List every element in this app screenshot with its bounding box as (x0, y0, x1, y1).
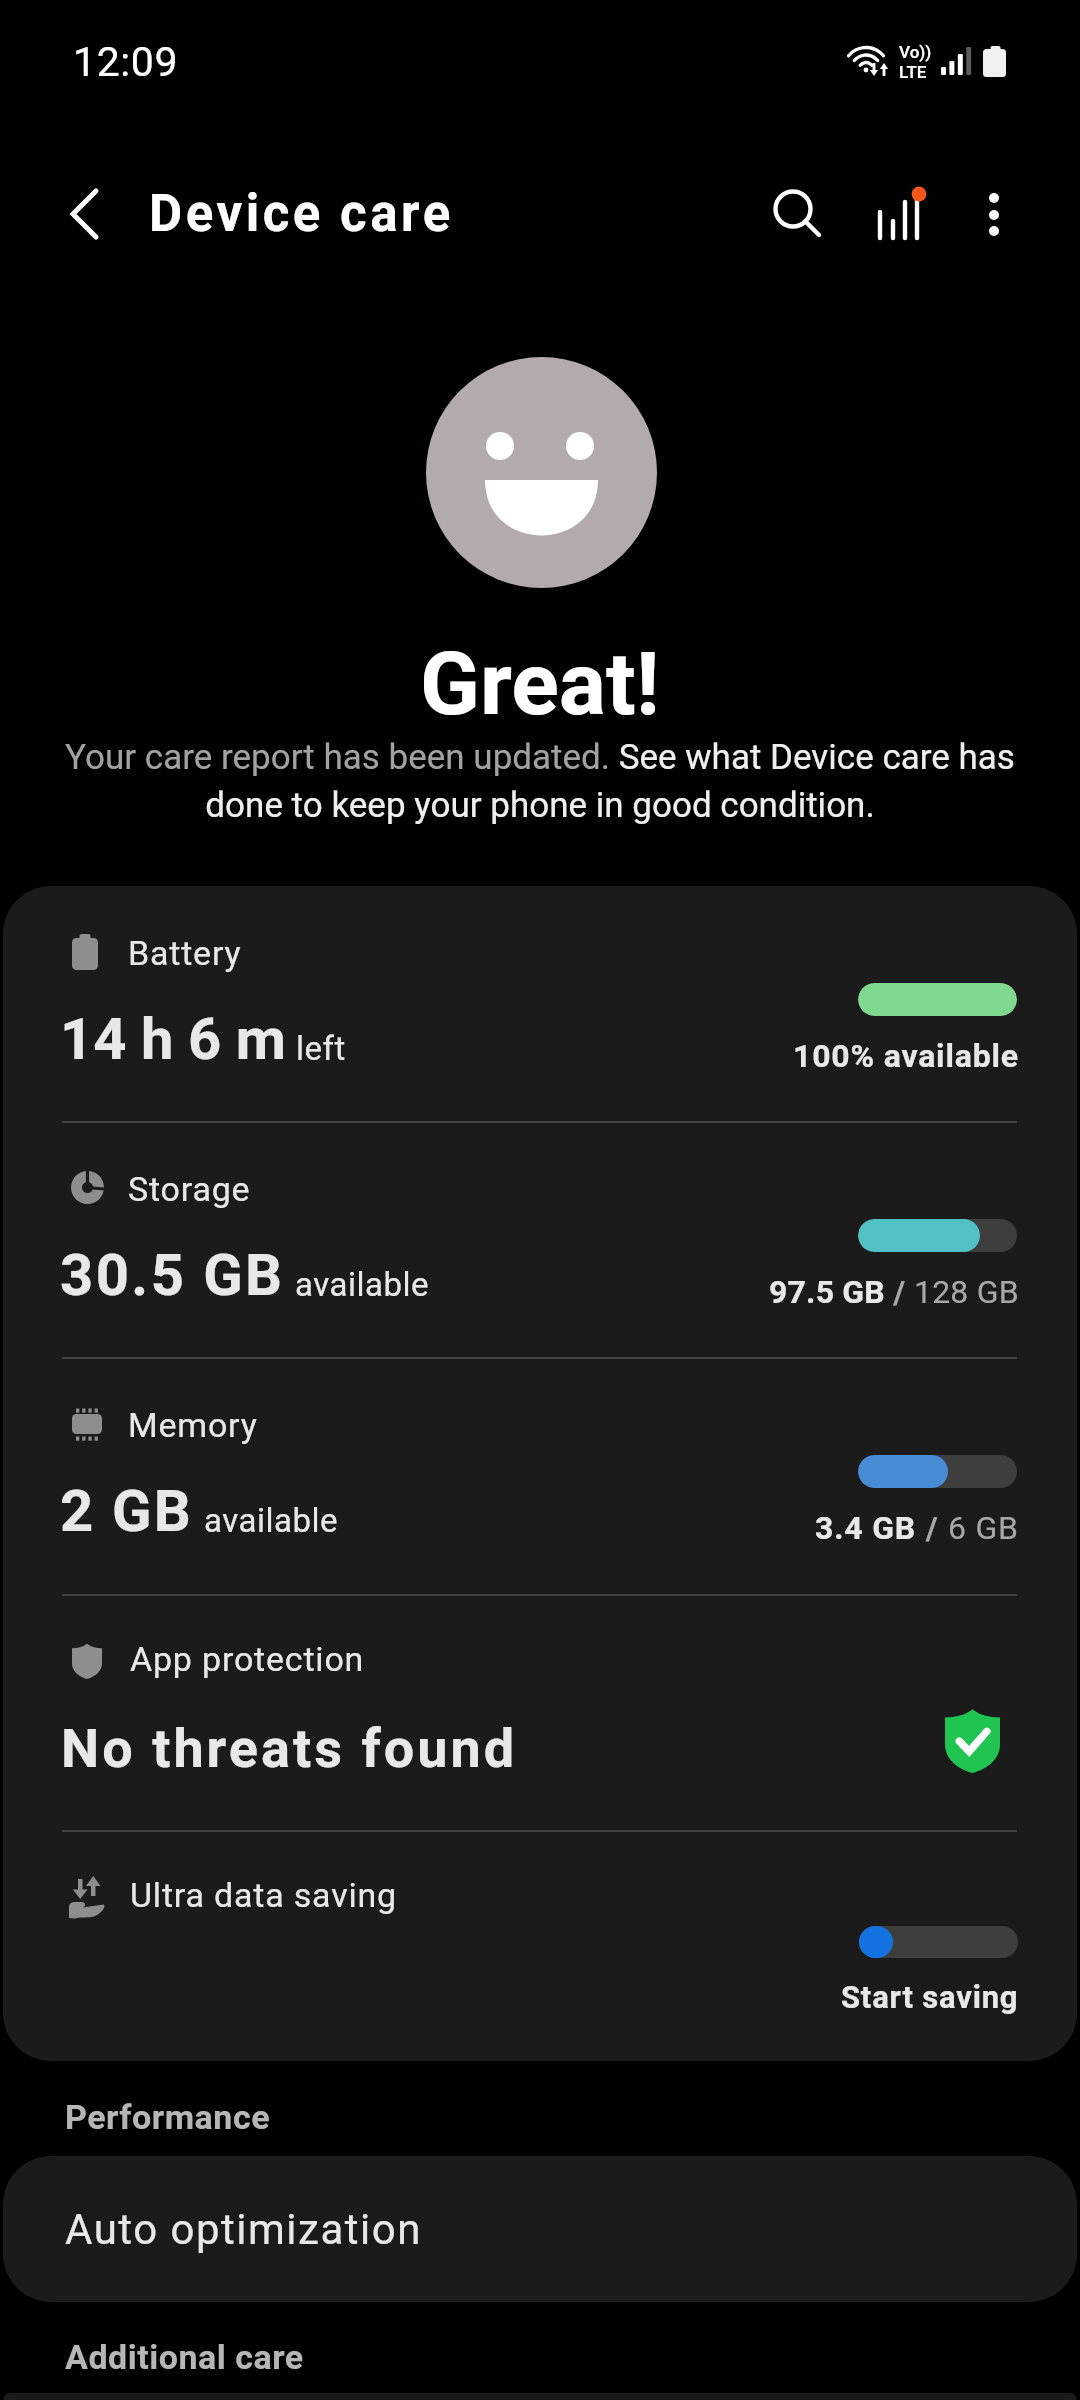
staticText: Device care (149, 184, 454, 244)
button[interactable]: Battery (3, 886, 1077, 1121)
staticText: / (885, 1273, 914, 1311)
staticText: 128 GB (914, 1273, 1019, 1311)
staticText: App protection (130, 1639, 365, 1679)
staticText: Auto optimization (65, 2205, 422, 2254)
staticText: Performance (65, 2097, 271, 2137)
button[interactable]: More options (941, 161, 1047, 267)
button[interactable]: Ultra data saving (859, 1926, 1018, 1958)
staticText: left (296, 1029, 346, 1068)
button[interactable]: Search (746, 161, 852, 267)
staticText: Ultra data saving (130, 1875, 397, 1915)
staticText: 30.5 GB (60, 1241, 285, 1309)
staticText: Your care report has been updated. See w… (50, 737, 1030, 826)
staticText: Great! (420, 632, 660, 735)
button[interactable]: Memory (3, 1358, 1077, 1593)
button[interactable]: Ultra data saving (3, 1831, 1077, 2056)
staticText: Battery (128, 933, 242, 973)
staticText: Storage (128, 1169, 251, 1209)
staticText: 6 GB (948, 1509, 1019, 1547)
button[interactable]: Storage (3, 1122, 1077, 1357)
staticText: LTE (899, 62, 927, 82)
button[interactable]: Diagnostics (852, 161, 958, 267)
staticText: 14 h 6 m (60, 1005, 286, 1073)
button[interactable]: Back (31, 161, 137, 267)
button[interactable]: App protection (3, 1595, 1077, 1830)
staticText: 97.5 GB (769, 1273, 885, 1311)
staticText: Start saving (841, 1979, 1019, 2015)
staticText: available (295, 1265, 429, 1304)
staticText: Memory (128, 1405, 258, 1445)
staticText: 3.4 GB (815, 1509, 917, 1547)
button[interactable]: Auto optimization (3, 2156, 1077, 2302)
staticText: 2 GB (60, 1477, 194, 1545)
staticText: 12:09 (73, 38, 179, 86)
staticText: No threats found (61, 1717, 518, 1780)
staticText: / (917, 1509, 948, 1547)
staticText: Additional care (65, 2337, 304, 2377)
staticText: 100% available (793, 1037, 1019, 1075)
staticText: Vo)) (899, 42, 932, 62)
staticText: available (204, 1501, 338, 1540)
